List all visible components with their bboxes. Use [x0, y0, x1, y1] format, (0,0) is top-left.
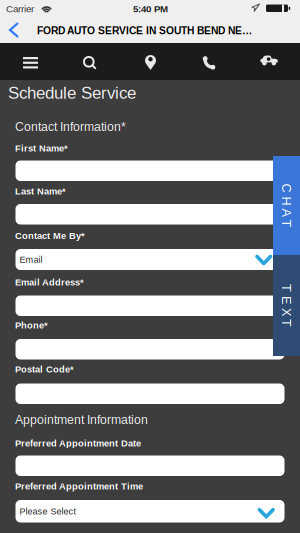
button[interactable]: Vehicles: [249, 43, 289, 78]
staticText: T E X T: [265, 298, 300, 313]
button[interactable]: Email: [15, 249, 284, 270]
button[interactable]: Menu: [11, 45, 50, 80]
button[interactable]: First Name: [15, 160, 284, 181]
staticText: Contact Me By*: [15, 230, 85, 241]
staticText: Schedule Service: [8, 83, 136, 102]
button[interactable]: Locations: [132, 44, 169, 81]
staticText: Postal Code*: [15, 364, 74, 374]
staticText: C H A T: [264, 198, 300, 213]
staticText: Contact Information*: [15, 120, 126, 134]
button[interactable]: Text: [273, 255, 300, 356]
staticText: Email: [19, 254, 42, 264]
staticText: Email Address*: [15, 277, 84, 287]
button[interactable]: Call: [190, 44, 229, 81]
button[interactable]: Search: [71, 44, 108, 81]
staticText: First Name*: [15, 143, 68, 153]
staticText: 5:40 PM: [133, 3, 168, 14]
staticText: Preferred Appointment Date: [15, 438, 141, 448]
button[interactable]: Please Select: [15, 500, 284, 522]
button[interactable]: Email Address: [15, 295, 284, 316]
staticText: Preferred Appointment Time: [15, 481, 143, 491]
staticText: FORD AUTO SERVICE IN SOUTH BEND NE…: [37, 25, 252, 36]
staticText: Carrier: [6, 3, 34, 14]
button[interactable]: Chat: [273, 156, 300, 255]
staticText: Appointment Information: [15, 413, 148, 427]
button[interactable]: Back: [0, 0, 24, 41]
button[interactable]: Last Name: [15, 204, 284, 224]
button[interactable]: Phone: [15, 339, 284, 359]
staticText: Last Name*: [15, 186, 66, 196]
staticText: Phone*: [15, 320, 48, 330]
button[interactable]: Preferred Appointment Date: [15, 455, 284, 476]
button[interactable]: Postal Code: [15, 383, 284, 404]
staticText: Please Select: [19, 506, 76, 516]
